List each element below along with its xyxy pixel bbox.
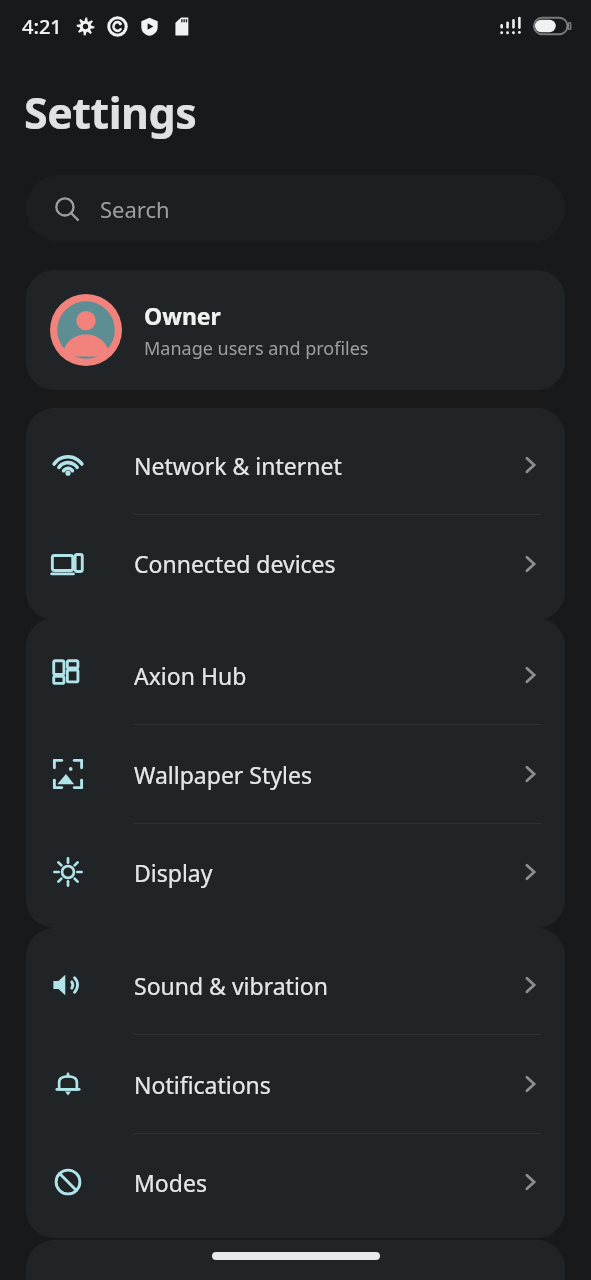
- staticText: Manage users and profiles: [144, 336, 369, 361]
- staticText: Connected devices: [134, 548, 517, 579]
- button[interactable]: Connected devices: [26, 515, 565, 612]
- staticText: Modes: [134, 1167, 517, 1198]
- staticText: Display: [134, 857, 517, 888]
- staticText: Owner: [144, 300, 221, 331]
- button[interactable]: Display: [26, 824, 565, 920]
- staticText: Network & internet: [134, 450, 517, 481]
- button[interactable]: Axion Hub: [26, 626, 565, 724]
- staticText: Settings: [24, 83, 197, 142]
- button[interactable]: Search: [26, 175, 565, 242]
- button[interactable]: Notifications: [26, 1035, 565, 1133]
- staticText: Axion Hub: [134, 660, 517, 691]
- staticText: Notifications: [134, 1069, 517, 1100]
- staticText: Wallpaper Styles: [134, 759, 517, 790]
- button[interactable]: Sound & vibration: [26, 936, 565, 1034]
- staticText: Sound & vibration: [134, 970, 517, 1001]
- button[interactable]: Wallpaper Styles: [26, 725, 565, 823]
- button[interactable]: Network & internet: [26, 416, 565, 514]
- button[interactable]: Owner: [26, 270, 565, 390]
- staticText: 4:21: [22, 13, 62, 40]
- button[interactable]: [26, 1240, 565, 1280]
- staticText: Search: [100, 194, 170, 224]
- button[interactable]: Modes: [26, 1134, 565, 1230]
